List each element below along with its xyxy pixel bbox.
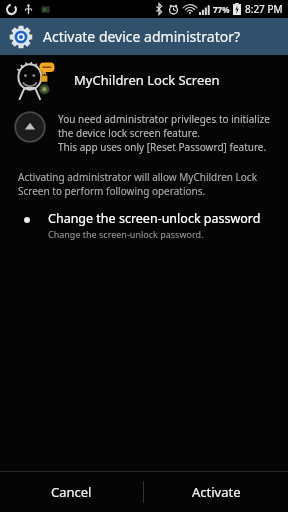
button[interactable]: Collapse details	[14, 111, 46, 143]
staticText: 77%	[213, 4, 230, 15]
staticText: Activating administrator will allow MyCh…	[18, 170, 270, 198]
button[interactable]: Activate	[144, 472, 288, 512]
staticText: You need administrator privileges to ini…	[58, 112, 278, 154]
staticText: Cancel	[51, 483, 92, 501]
button[interactable]: Cancel	[0, 472, 143, 512]
staticText: MyChildren Lock Screen	[74, 71, 220, 89]
staticText: 8:27 PM	[245, 2, 283, 16]
staticText: Activate	[192, 483, 241, 501]
staticText: Change the screen-unlock password	[48, 210, 261, 227]
staticText: Change the screen-unlock password.	[48, 228, 204, 240]
staticText: Activate device administrator?	[43, 27, 241, 46]
